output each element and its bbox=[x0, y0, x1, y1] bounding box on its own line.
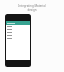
button[interactable] bbox=[6, 31, 30, 34]
button[interactable] bbox=[6, 21, 30, 25]
button[interactable] bbox=[6, 34, 30, 37]
button[interactable] bbox=[6, 28, 30, 31]
button[interactable] bbox=[6, 37, 30, 40]
staticText: Integrating Material design bbox=[18, 4, 46, 12]
button[interactable] bbox=[6, 25, 30, 28]
